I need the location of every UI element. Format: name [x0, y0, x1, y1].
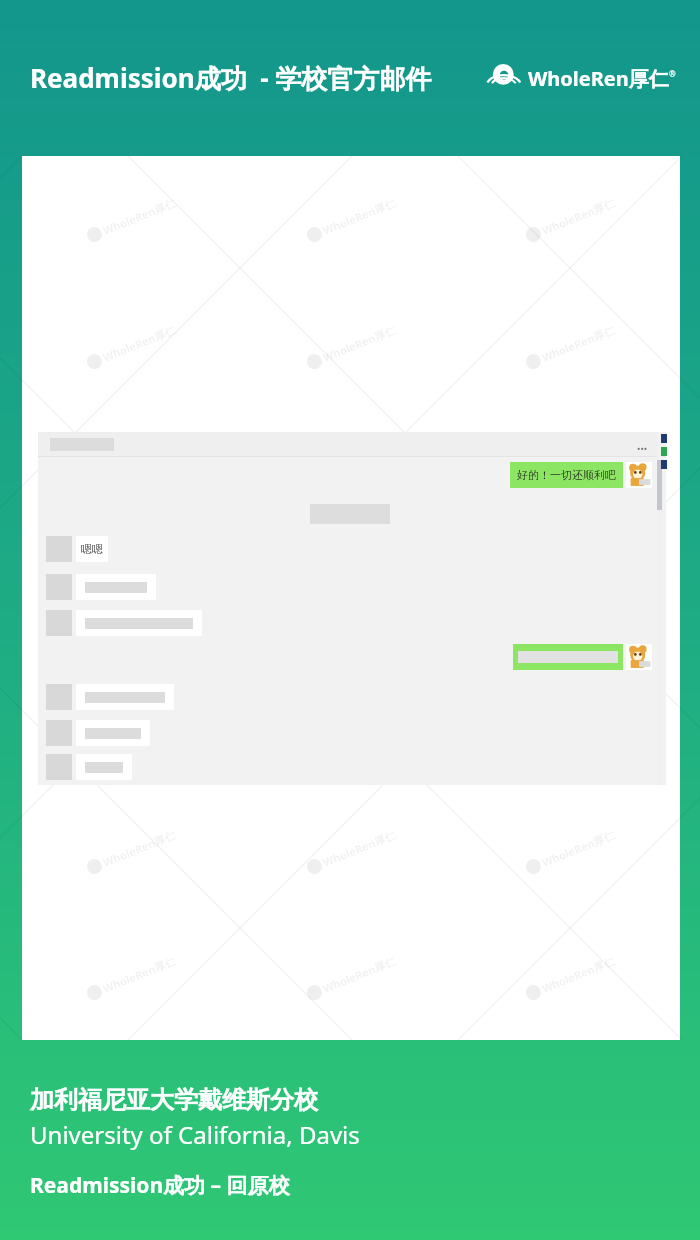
staticText: 嗯嗯 — [81, 542, 103, 556]
button[interactable]: 好的！一切还顺利吧 — [510, 462, 652, 488]
staticText: WholeRen厚仁 — [539, 953, 617, 996]
staticText: WholeRen厚仁 — [320, 953, 398, 996]
staticText: WholeRen厚仁 — [100, 701, 178, 744]
staticText: University of California, Davis — [30, 1118, 360, 1151]
staticText: WholeRen厚仁 — [100, 449, 178, 492]
staticText: WholeRen厚仁 — [539, 195, 617, 238]
staticText: WholeRen厚仁 — [100, 827, 178, 870]
staticText: WholeRen厚仁 — [320, 195, 398, 238]
button[interactable] — [46, 610, 202, 636]
staticText: WholeRen厚仁 — [100, 195, 178, 238]
staticText: WholeRen厚仁 — [100, 953, 178, 996]
staticText: Readmission成功 - 学校官方邮件 — [30, 60, 432, 96]
button[interactable] — [46, 754, 132, 780]
other: WholeRen logo — [486, 60, 676, 96]
staticText: WholeRen厚仁 — [100, 322, 178, 365]
button[interactable] — [46, 574, 156, 600]
staticText: 好的！一切还顺利吧 — [517, 468, 616, 482]
staticText: WholeRen厚仁 — [539, 322, 617, 365]
staticText: WholeRen厚仁 — [539, 449, 617, 492]
staticText: WholeRen厚仁 — [100, 575, 178, 618]
staticText: WholeRen厚仁 — [528, 65, 669, 92]
staticText: WholeRen厚仁 — [320, 827, 398, 870]
staticText: 加利福尼亚大学戴维斯分校 — [30, 1085, 318, 1115]
button[interactable]: 嗯嗯 — [46, 536, 108, 562]
staticText: ® — [669, 68, 676, 79]
staticText: WholeRen厚仁 — [539, 827, 617, 870]
staticText: WholeRen厚仁 — [320, 322, 398, 365]
button[interactable] — [46, 684, 174, 710]
button[interactable] — [513, 644, 652, 670]
button[interactable]: More options — [630, 436, 654, 460]
staticText: Readmission成功 – 回原校 — [30, 1171, 290, 1200]
staticText: ••• — [637, 442, 648, 454]
button[interactable] — [46, 720, 150, 746]
